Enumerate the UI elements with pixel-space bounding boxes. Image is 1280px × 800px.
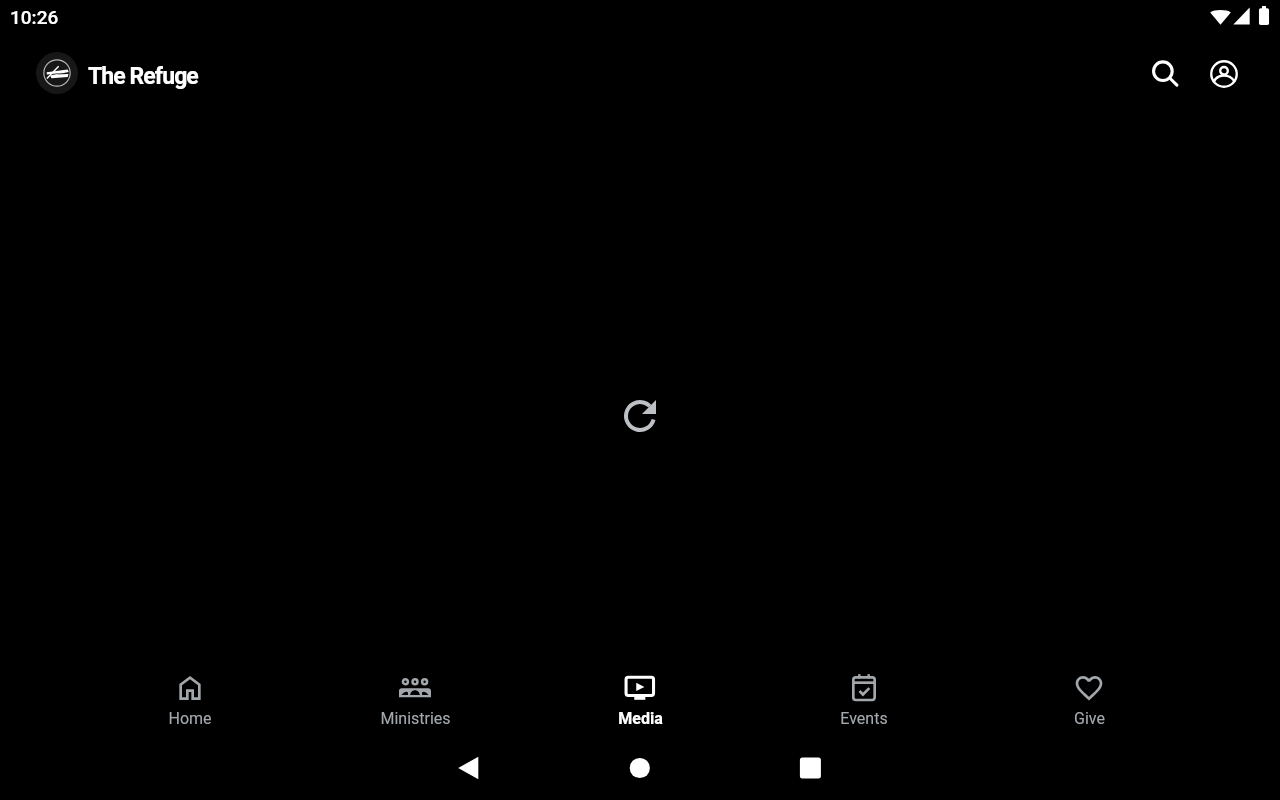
button[interactable]: Home — [0, 654, 256, 744]
button[interactable]: Search — [1140, 48, 1188, 96]
staticText: Give — [1074, 709, 1105, 728]
staticText: Media — [618, 709, 663, 728]
button[interactable]: Home — [606, 744, 674, 792]
staticText: Home — [168, 709, 212, 728]
staticText: Events — [840, 709, 888, 728]
button[interactable]: Events — [768, 654, 1024, 744]
staticText: 10:26 — [10, 6, 59, 28]
button[interactable]: Media — [512, 654, 768, 744]
staticText: Ministries — [380, 709, 451, 728]
button[interactable]: Account — [1200, 50, 1248, 98]
button[interactable]: Ministries — [256, 654, 512, 744]
button[interactable]: Recent apps — [776, 744, 844, 792]
staticText: The Refuge — [88, 63, 198, 90]
button[interactable]: Give — [1024, 654, 1280, 744]
button[interactable]: Reload page — [616, 392, 664, 440]
button[interactable]: Back — [434, 744, 502, 792]
